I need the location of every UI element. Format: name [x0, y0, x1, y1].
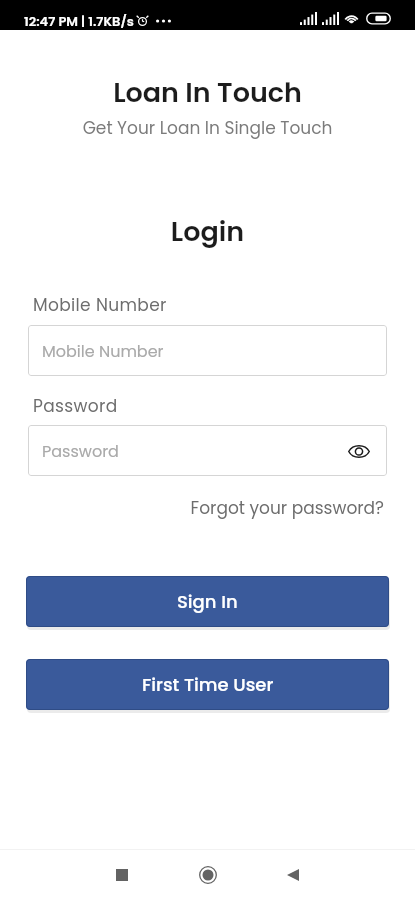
- staticText: Login: [0, 213, 415, 251]
- button[interactable]: Home: [185, 850, 230, 900]
- staticText: 12:47 PM | 1.7KB/s: [24, 12, 134, 30]
- staticText: Sign In: [177, 589, 238, 614]
- button[interactable]: First Time User: [26, 659, 389, 710]
- staticText: Mobile Number: [33, 293, 167, 317]
- button[interactable]: Password: [28, 425, 387, 476]
- staticText: Loan In Touch: [0, 74, 415, 112]
- staticText: Password: [42, 440, 119, 462]
- staticText: First Time User: [142, 672, 274, 697]
- button[interactable]: Forgot your password?: [28, 496, 384, 520]
- button[interactable]: Back: [270, 850, 315, 900]
- button[interactable]: Mobile Number: [28, 325, 387, 376]
- button[interactable]: Sign In: [26, 576, 389, 627]
- button[interactable]: Show password: [345, 437, 373, 465]
- button[interactable]: Recent apps: [99, 850, 144, 900]
- staticText: Mobile Number: [42, 340, 164, 362]
- staticText: Get Your Loan In Single Touch: [0, 116, 415, 140]
- staticText: Password: [33, 394, 118, 418]
